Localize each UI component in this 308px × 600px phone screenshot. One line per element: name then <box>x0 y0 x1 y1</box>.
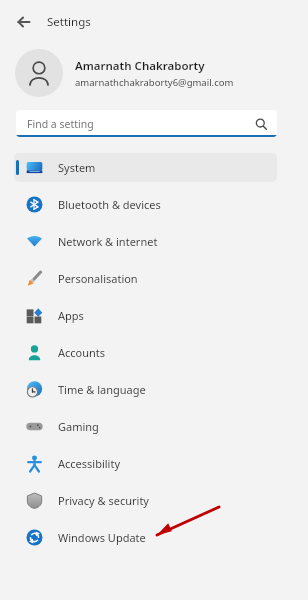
button[interactable]: Bluetooth & devices <box>14 190 277 219</box>
staticText: Bluetooth & devices <box>58 197 161 212</box>
staticText: Windows Update <box>58 530 146 545</box>
staticText: Settings <box>47 14 91 30</box>
button[interactable]: Back <box>12 10 36 34</box>
button[interactable]: Find a setting <box>16 110 277 137</box>
staticText: Personalisation <box>58 271 138 286</box>
button[interactable]: Windows Update <box>14 523 277 552</box>
button[interactable]: System <box>14 153 277 182</box>
staticText: Find a setting <box>27 117 94 131</box>
button[interactable]: Amarnath Chakraborty <box>15 44 294 102</box>
button[interactable]: Time & language <box>14 375 277 404</box>
button[interactable]: Personalisation <box>14 264 277 293</box>
staticText: System <box>58 160 96 175</box>
button[interactable]: Apps <box>14 301 277 330</box>
staticText: Amarnath Chakraborty <box>75 58 205 74</box>
staticText: Network & internet <box>58 234 158 249</box>
staticText: Privacy & security <box>58 493 149 508</box>
button[interactable]: Accounts <box>14 338 277 367</box>
button[interactable]: Privacy & security <box>14 486 277 515</box>
button[interactable]: Network & internet <box>14 227 277 256</box>
button[interactable]: Accessibility <box>14 449 277 478</box>
staticText: Accounts <box>58 345 106 360</box>
staticText: Accessibility <box>58 456 121 471</box>
staticText: Time & language <box>58 382 146 397</box>
staticText: Gaming <box>58 419 99 434</box>
button[interactable]: Gaming <box>14 412 277 441</box>
staticText: amarnathchakraborty6@gmail.com <box>75 76 234 89</box>
staticText: Apps <box>58 308 84 323</box>
